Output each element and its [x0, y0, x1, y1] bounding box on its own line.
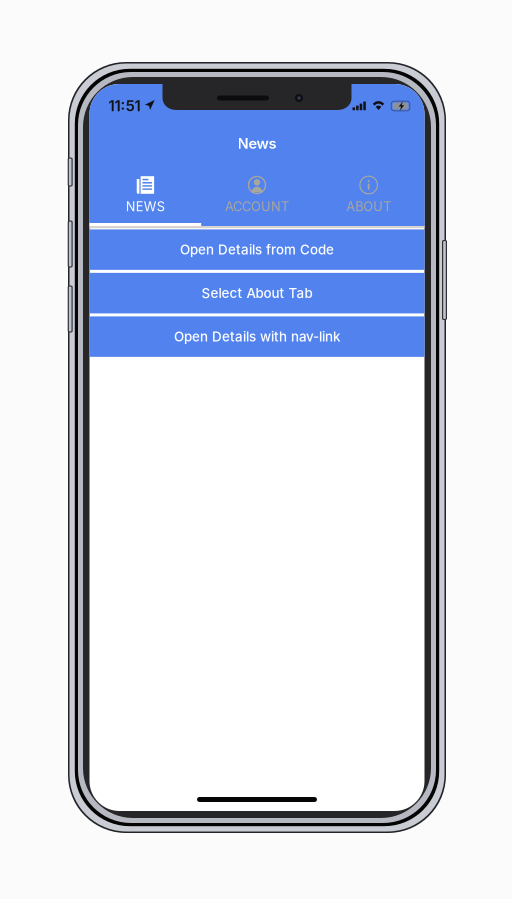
button[interactable]: Open Details from Code: [89, 229, 424, 270]
staticText: ABOUT: [346, 199, 391, 214]
staticText: ACCOUNT: [225, 199, 289, 214]
staticText: 11:51: [108, 97, 140, 115]
staticText: Select About Tab: [201, 285, 312, 301]
staticText: Open Details from Code: [180, 242, 334, 258]
button[interactable]: NEWS: [89, 174, 201, 226]
button[interactable]: Select About Tab: [89, 273, 424, 313]
button[interactable]: ACCOUNT: [201, 174, 313, 226]
button[interactable]: ABOUT: [313, 174, 424, 226]
staticText: Open Details with nav-link: [174, 329, 340, 345]
button[interactable]: Open Details with nav-link: [89, 316, 424, 357]
staticText: NEWS: [126, 199, 165, 214]
staticText: News: [237, 135, 276, 152]
